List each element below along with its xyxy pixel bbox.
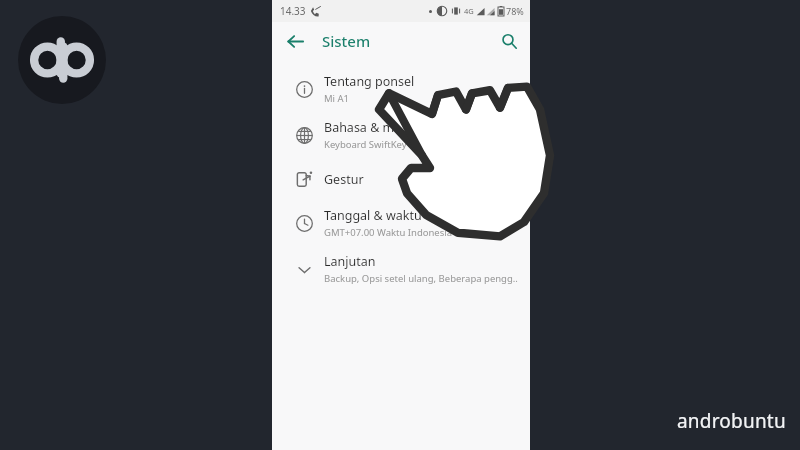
button[interactable]: Search	[494, 26, 524, 56]
staticText: 78%	[506, 5, 524, 17]
staticText: Bahasa & masukan	[324, 119, 437, 136]
button[interactable]: Tentang ponsel	[272, 66, 530, 112]
staticText: androbuntu	[677, 408, 786, 434]
button[interactable]: Tanggal & waktu	[272, 200, 530, 246]
staticText: Tanggal & waktu	[324, 207, 422, 224]
button[interactable]: Bahasa & masukan	[272, 112, 530, 158]
staticText: Gestur	[324, 171, 364, 188]
button[interactable]: Back	[280, 26, 310, 56]
staticText: Mi A1	[324, 92, 350, 105]
button[interactable]: Androbuntu logo	[18, 16, 106, 104]
staticText: Keyboard SwiftKey	[324, 138, 407, 151]
staticText: Sistem	[322, 31, 371, 51]
button[interactable]: androbuntu	[677, 408, 786, 434]
button[interactable]: Gestur	[272, 158, 530, 200]
staticText: Tentang ponsel	[324, 73, 415, 90]
staticText: Lanjutan	[324, 253, 376, 270]
staticText: 4G	[464, 6, 474, 16]
staticText: GMT+07.00 Waktu Indonesia Barat	[324, 226, 479, 239]
staticText: Backup, Opsi setel ulang, Beberapa pengg…	[324, 272, 518, 285]
button[interactable]: Lanjutan	[272, 246, 530, 292]
staticText: 14.33	[280, 4, 306, 18]
